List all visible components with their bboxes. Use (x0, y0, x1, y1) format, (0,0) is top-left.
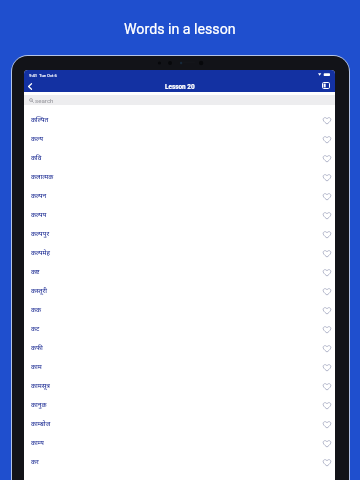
button[interactable]: काम (24, 356, 335, 375)
button[interactable]: कलात्मक (24, 166, 335, 185)
staticText: कलात्मक (31, 172, 54, 181)
staticText: कर (31, 457, 39, 466)
button[interactable]: कट (24, 318, 335, 337)
staticText: कल्पपुर (31, 229, 50, 238)
button[interactable]: कल्पन (24, 185, 335, 204)
staticText: Tue Oct 6 (39, 73, 57, 78)
staticText: काम्बोज (31, 419, 51, 428)
button[interactable]: कामसूत्र (24, 375, 335, 394)
button[interactable]: कल्पपुर (24, 223, 335, 242)
staticText: कल्पय (31, 210, 47, 219)
staticText: कल्य (31, 134, 44, 143)
button[interactable]: कष्ट (24, 261, 335, 280)
button[interactable]: कल्य (24, 128, 335, 147)
button[interactable]: कानुक (24, 394, 335, 413)
staticText: Lesson 20 (165, 83, 195, 91)
staticText: कल्पन (31, 191, 47, 200)
staticText: कानुक (31, 400, 47, 409)
staticText: search (35, 97, 54, 104)
staticText: काम (31, 362, 42, 371)
button[interactable]: कक (24, 299, 335, 318)
staticText: कल्पित (31, 115, 49, 124)
staticText: कल्पमेह (31, 248, 51, 257)
staticText: Words in a lesson (124, 21, 236, 38)
button[interactable]: Toggle sidebar (320, 80, 331, 91)
button[interactable]: कल्पमेह (24, 242, 335, 261)
staticText: 9:41 (29, 73, 38, 78)
button[interactable]: कर (24, 451, 335, 470)
button[interactable]: कल्पित (24, 109, 335, 128)
button[interactable]: कवि (24, 147, 335, 166)
button[interactable]: कल्पय (24, 204, 335, 223)
button[interactable]: कफी (24, 337, 335, 356)
button[interactable]: कस्तूरी (24, 280, 335, 299)
staticText: कामसूत्र (31, 381, 50, 390)
staticText: काम्य (31, 438, 44, 447)
staticText: कवि (31, 153, 42, 162)
button[interactable]: काम्य (24, 432, 335, 451)
staticText: कट (31, 324, 40, 333)
staticText: कस्तूरी (31, 286, 47, 295)
staticText: कष्ट (31, 267, 40, 276)
staticText: कक (31, 305, 42, 314)
button[interactable]: काम्बोज (24, 413, 335, 432)
button[interactable]: Back (24, 80, 36, 92)
staticText: कफी (31, 343, 43, 352)
